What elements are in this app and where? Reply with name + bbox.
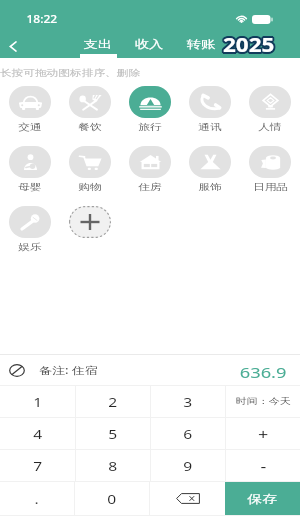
staticText: 2025 (221, 32, 273, 58)
staticText: 5 (108, 425, 118, 443)
button[interactable]: 8 (76, 450, 150, 481)
staticText: 服饰 (198, 181, 222, 192)
staticText: 购物 (78, 181, 102, 192)
button[interactable]: 9 (151, 450, 225, 481)
staticText: 636.9 (240, 362, 287, 378)
staticText: 2025 (222, 34, 274, 60)
staticText: 8 (108, 457, 118, 475)
staticText: 保存 (248, 492, 277, 506)
button[interactable]: 日用品 (249, 145, 291, 189)
staticText: 9 (183, 457, 193, 475)
button[interactable]: 通讯 (189, 85, 231, 129)
button[interactable]: 保存 (225, 482, 300, 515)
staticText: 3 (183, 393, 193, 411)
staticText: 4 (33, 425, 43, 443)
staticText: 人情 (258, 121, 282, 132)
staticText: + (258, 424, 269, 444)
staticText: 2025 (221, 33, 273, 59)
staticText: 母婴 (18, 181, 42, 192)
staticText: 2025 (225, 33, 277, 59)
staticText: 收入 (135, 37, 163, 51)
staticText: 娱乐 (18, 241, 42, 252)
staticText: 7 (33, 457, 43, 475)
button[interactable]: 2 (76, 386, 150, 417)
button[interactable]: 7 (0, 450, 75, 481)
button[interactable]: 转账 (177, 32, 225, 58)
staticText: 2025 (224, 31, 276, 57)
button[interactable]: - (226, 450, 300, 481)
staticText: 2025 (223, 32, 275, 58)
button[interactable]: 餐饮 (69, 85, 111, 129)
staticText: 住房 (138, 181, 162, 192)
staticText: 2025 (224, 34, 276, 60)
button[interactable]: 支出 (74, 32, 122, 58)
button[interactable]: 0 (75, 482, 149, 515)
button[interactable]: + (226, 418, 300, 449)
staticText: 2025 (223, 30, 275, 56)
staticText: 2025 (223, 34, 275, 60)
staticText: 通讯 (198, 121, 222, 132)
staticText: . (35, 490, 39, 508)
button[interactable]: Add category (69, 206, 111, 238)
staticText: 时间：今天 (236, 396, 291, 407)
button[interactable]: 1 (0, 386, 75, 417)
staticText: 2025 (222, 33, 274, 59)
staticText: 旅行 (138, 121, 162, 132)
staticText: 2025 (224, 33, 276, 59)
button[interactable]: Back (2, 34, 24, 58)
button[interactable]: 交通 (9, 85, 51, 129)
button[interactable]: 4 (0, 418, 75, 449)
button[interactable]: 2025 (219, 32, 275, 58)
staticText: 转账 (187, 37, 215, 51)
staticText: 长按可拖动图标排序、删除 (0, 67, 140, 78)
button[interactable]: 时间：今天 (226, 386, 300, 417)
staticText: 0 (107, 490, 117, 508)
staticText: 支出 (84, 37, 112, 51)
staticText: 2025 (225, 31, 277, 57)
staticText: 2025 (225, 32, 277, 58)
staticText: 2025 (222, 31, 274, 57)
staticText: 6 (183, 425, 193, 443)
staticText: - (260, 456, 266, 476)
staticText: 餐饮 (78, 121, 102, 132)
button[interactable]: 人情 (249, 85, 291, 129)
button[interactable]: 娱乐 (9, 205, 51, 249)
button[interactable]: 5 (76, 418, 150, 449)
button[interactable]: 6 (151, 418, 225, 449)
button[interactable]: 服饰 (189, 145, 231, 189)
staticText: 2025 (221, 31, 273, 57)
staticText: 2025 (222, 30, 274, 56)
button[interactable]: Backspace (150, 482, 225, 515)
button[interactable]: 购物 (69, 145, 111, 189)
button[interactable]: 3 (151, 386, 225, 417)
button[interactable]: 旅行 (129, 85, 171, 129)
staticText: 交通 (18, 121, 42, 132)
staticText: 18:22 (26, 12, 58, 26)
button[interactable]: 住房 (129, 145, 171, 189)
button[interactable]: 母婴 (9, 145, 51, 189)
button[interactable]: 收入 (125, 32, 173, 58)
staticText: 1 (33, 393, 43, 411)
button[interactable]: . (0, 482, 74, 515)
staticText: 日用品 (253, 181, 288, 192)
staticText: 2 (108, 393, 118, 411)
staticText: 备注: 住宿 (39, 363, 99, 377)
button[interactable]: 备注: 住宿 (0, 355, 300, 385)
staticText: 2025 (224, 30, 276, 56)
